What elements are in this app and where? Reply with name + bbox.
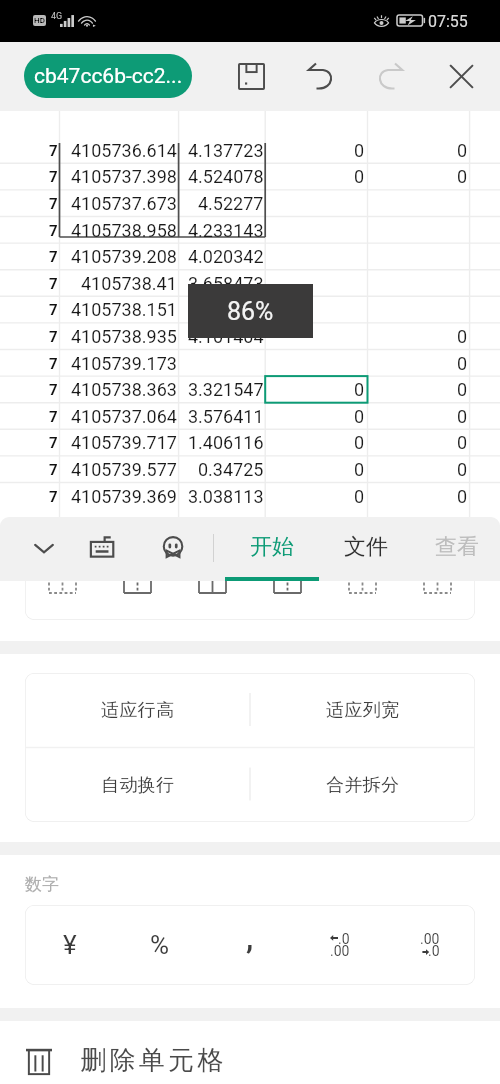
button[interactable]: Currency [25, 905, 115, 985]
staticText: 3.658473 [188, 273, 264, 294]
staticText: 7 [49, 142, 58, 160]
staticText: 7 [49, 381, 58, 399]
staticText: 0 [354, 140, 365, 161]
staticText: 4105737.398 [71, 166, 177, 187]
button[interactable]: Keyboard [76, 517, 132, 579]
staticText: 查看 [435, 533, 479, 561]
staticText: 7 [49, 488, 58, 506]
button[interactable]: Redo [370, 56, 410, 96]
staticText: 3.321547 [188, 379, 264, 400]
staticText: 3.038113 [188, 486, 264, 507]
staticText: 7 [49, 328, 58, 346]
button[interactable]: 适应行高 [25, 673, 250, 748]
staticText: 7 [49, 222, 58, 240]
staticText: 4105737.673 [71, 193, 177, 214]
button[interactable]: 自动换行 [25, 748, 250, 822]
staticText: 4105738.41 [81, 273, 177, 294]
button[interactable]: 开始 [225, 517, 319, 581]
button[interactable]: Remove decimal [385, 905, 475, 985]
staticText: 7 [49, 434, 58, 452]
button[interactable]: 查看 [410, 517, 500, 581]
button[interactable]: Close [441, 56, 481, 96]
staticText: 自动换行 [101, 774, 175, 797]
staticText: 0 [457, 353, 468, 374]
staticText: HD [34, 16, 45, 25]
staticText: 1.406116 [188, 432, 264, 453]
staticText: 7 [49, 355, 58, 373]
staticText: 4105738.958 [71, 220, 177, 241]
staticText: 文件 [344, 533, 388, 561]
staticText: ¥ [63, 930, 77, 960]
staticText: 开始 [250, 533, 294, 561]
button[interactable]: Save [231, 56, 271, 96]
button[interactable]: Border style 2 [175, 547, 250, 620]
button[interactable]: Percent [115, 905, 205, 985]
staticText: 4.020342 [188, 246, 264, 267]
staticText: 4105739.208 [71, 246, 177, 267]
staticText: 4105736.614 [71, 140, 177, 161]
staticText: 7 [49, 275, 58, 293]
staticText: 4.101404 [188, 326, 264, 347]
staticText: 4105739.173 [71, 353, 177, 374]
button[interactable]: 合并拆分 [250, 748, 475, 822]
button[interactable]: Border style 3 [250, 547, 325, 620]
staticText: .00 [420, 931, 440, 947]
button[interactable]: 文件 [319, 517, 413, 581]
staticText: 删除单元格 [79, 1044, 225, 1077]
staticText: 0 [457, 406, 468, 427]
staticText: 4.137723 [188, 140, 264, 161]
staticText: 0 [457, 326, 468, 347]
staticText: 4.233143 [188, 220, 264, 241]
button[interactable]: 适应列宽 [250, 673, 475, 748]
staticText: 0 [354, 166, 365, 187]
staticText: 4105738.935 [71, 326, 177, 347]
button[interactable]: 删除单元格 [0, 1036, 500, 1084]
staticText: 4105737.064 [71, 406, 177, 427]
button[interactable]: Undo [300, 56, 340, 96]
staticText: 数字 [25, 874, 59, 895]
staticText: , [246, 921, 254, 956]
button[interactable]: Border style 5 [400, 547, 475, 620]
button[interactable]: cb47cc6b-cc2... [24, 54, 192, 98]
staticText: .0 [428, 943, 440, 959]
staticText: 0 [354, 406, 365, 427]
staticText: 4.524078 [188, 166, 264, 187]
staticText: 0.34725 [198, 459, 264, 480]
staticText: 7 [49, 195, 58, 213]
staticText: 0 [457, 166, 468, 187]
staticText: 3.576411 [188, 406, 264, 427]
button[interactable]: Collapse [14, 517, 74, 579]
staticText: 0 [354, 379, 365, 400]
staticText: 0 [457, 140, 468, 161]
button[interactable]: Emoji [146, 517, 202, 579]
staticText: .00 [330, 943, 350, 959]
button[interactable]: Border style 4 [325, 547, 400, 620]
button[interactable]: Border style 1 [100, 547, 175, 620]
staticText: 0 [457, 432, 468, 453]
staticText: 4105739.717 [71, 432, 177, 453]
staticText: 7 [49, 408, 58, 426]
staticText: 7 [49, 248, 58, 266]
staticText: 4105739.577 [71, 459, 177, 480]
staticText: .0 [338, 931, 350, 947]
staticText: 适应列宽 [326, 699, 400, 722]
staticText: 4105738.151 [71, 299, 177, 320]
button[interactable]: Add decimal [295, 905, 385, 985]
staticText: 7 [49, 461, 58, 479]
staticText: 4105739.369 [71, 486, 177, 507]
staticText: 合并拆分 [326, 774, 400, 797]
staticText: % [150, 930, 170, 960]
staticText: 4105738.363 [71, 379, 177, 400]
staticText: 0 [354, 459, 365, 480]
staticText: 86% [227, 297, 274, 326]
staticText: 0 [354, 432, 365, 453]
staticText: 4.52277 [198, 193, 264, 214]
staticText: 7 [49, 301, 58, 319]
button[interactable]: Border style 0 [25, 547, 100, 620]
staticText: 07:55 [428, 12, 468, 31]
staticText: cb47cc6b-cc2... [34, 64, 183, 89]
button[interactable]: Comma [205, 905, 295, 985]
staticText: 0 [457, 486, 468, 507]
staticText: 0 [457, 459, 468, 480]
staticText: 4G [51, 11, 63, 22]
